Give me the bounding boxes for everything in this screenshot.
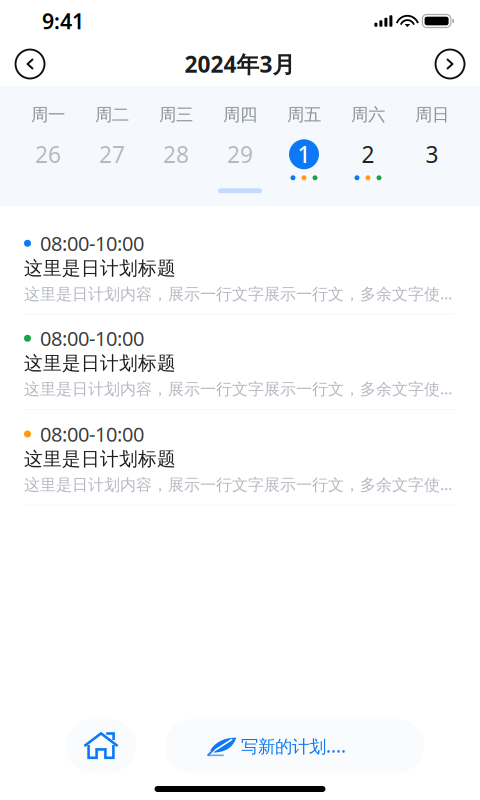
staticText: 28	[163, 139, 189, 169]
button[interactable]: Home	[66, 719, 136, 773]
staticText: 1	[297, 139, 310, 169]
staticText: 这里是日计划内容，展示一行文字展示一行文，多余文字使用...	[24, 283, 462, 304]
staticText: 9:41	[42, 7, 84, 35]
staticText: 周二	[95, 104, 129, 125]
staticText: 这里是日计划内容，展示一行文字展示一行文，多余文字使用...	[24, 473, 462, 495]
staticText: 这里是日计划标题	[24, 447, 176, 470]
staticText: 周三	[159, 104, 193, 125]
staticText: 周五	[287, 104, 321, 125]
staticText: 写新的计划....	[241, 734, 346, 757]
staticText: 这里是日计划内容，展示一行文字展示一行文，多余文字使用...	[24, 378, 462, 399]
button[interactable]: Next month	[434, 48, 466, 80]
staticText: 08:00-10:00	[40, 325, 144, 352]
staticText: 2024年3月	[184, 49, 295, 79]
button[interactable]: 08:00-10:00	[0, 314, 480, 409]
staticText: 26	[35, 139, 61, 169]
staticText: 27	[99, 139, 125, 169]
staticText: 周六	[351, 104, 385, 125]
staticText: 这里是日计划标题	[24, 352, 176, 375]
button[interactable]: 08:00-10:00	[0, 206, 480, 313]
staticText: 29	[227, 139, 253, 169]
staticText: 08:00-10:00	[40, 230, 144, 257]
button[interactable]: 写新的计划....	[165, 719, 424, 773]
staticText: 2	[361, 139, 374, 169]
staticText: 08:00-10:00	[40, 421, 144, 447]
staticText: 这里是日计划标题	[24, 257, 176, 280]
staticText: 周四	[223, 104, 257, 125]
staticText: 周日	[415, 104, 449, 125]
button[interactable]: 08:00-10:00	[0, 410, 480, 505]
staticText: 3	[425, 139, 438, 169]
button[interactable]: Previous month	[14, 48, 46, 80]
staticText: 周一	[31, 104, 65, 125]
